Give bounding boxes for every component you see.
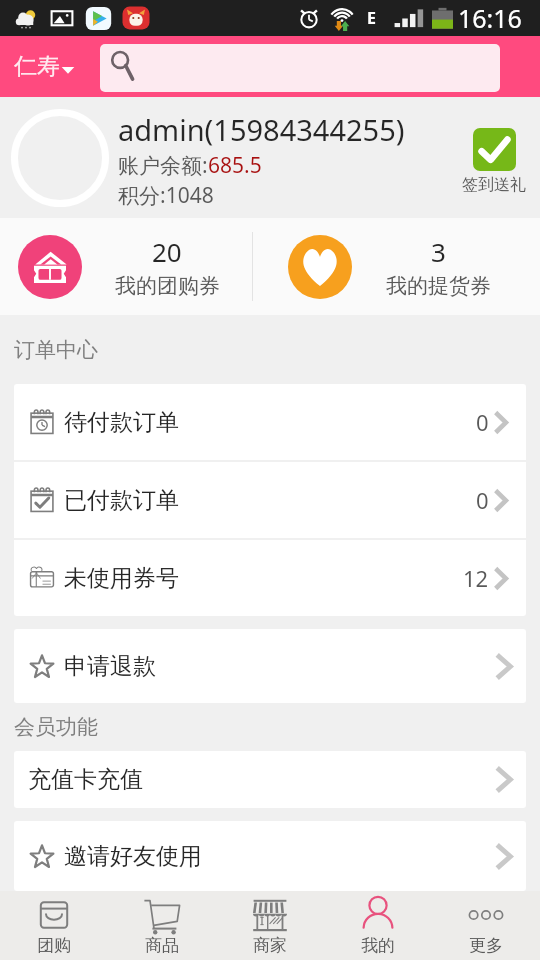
staticText: 我的 <box>361 935 395 956</box>
staticText: 已付款订单 <box>64 486 179 515</box>
staticText: 0 <box>476 407 489 437</box>
staticText: 充值卡充值 <box>28 765 143 794</box>
staticText: 我的团购券 <box>115 273 220 299</box>
staticText: 邀请好友使用 <box>64 842 202 871</box>
staticText: 16:16 <box>458 1 522 35</box>
button[interactable]: 商品 <box>108 891 216 960</box>
staticText: 未使用券号 <box>64 564 179 593</box>
button[interactable]: 仁寿 <box>0 36 100 97</box>
staticText: 商家 <box>253 935 287 956</box>
button[interactable]: 未使用券号 <box>14 540 526 616</box>
button[interactable]: 更多 <box>432 891 540 960</box>
button[interactable]: 我的 <box>324 891 432 960</box>
staticText: admin(15984344255) <box>118 110 405 149</box>
staticText: 会员功能 <box>14 714 98 740</box>
staticText: 0 <box>476 485 489 515</box>
button[interactable]: 待付款订单 <box>14 384 526 460</box>
button[interactable]: 3 <box>253 218 540 315</box>
staticText: 3 <box>431 234 446 269</box>
staticText: 订单中心 <box>14 337 98 363</box>
button[interactable]: 团购 <box>0 891 108 960</box>
staticText: 签到送礼 <box>462 175 526 195</box>
button[interactable]: 20 <box>0 218 252 315</box>
staticText: E <box>367 7 376 29</box>
button[interactable]: Search <box>100 44 500 92</box>
button[interactable]: 签到送礼 <box>462 128 526 195</box>
staticText: 积分:1048 <box>118 181 214 210</box>
button[interactable]: 申请退款 <box>14 629 526 703</box>
staticText: 账户余额: <box>118 151 208 180</box>
staticText: 12 <box>463 563 489 593</box>
staticText: 待付款订单 <box>64 408 179 437</box>
staticText: 我的提货券 <box>386 273 491 299</box>
staticText: 申请退款 <box>64 652 156 681</box>
staticText: 更多 <box>469 935 503 956</box>
button[interactable]: 充值卡充值 <box>14 751 526 808</box>
button[interactable]: 邀请好友使用 <box>14 821 526 891</box>
staticText: 仁寿 <box>14 52 60 81</box>
button[interactable]: 已付款订单 <box>14 462 526 538</box>
staticText: 20 <box>152 234 182 269</box>
staticText: 685.5 <box>208 151 262 180</box>
staticText: 团购 <box>37 935 71 956</box>
staticText: 商品 <box>145 935 179 956</box>
button[interactable]: 商家 <box>216 891 324 960</box>
